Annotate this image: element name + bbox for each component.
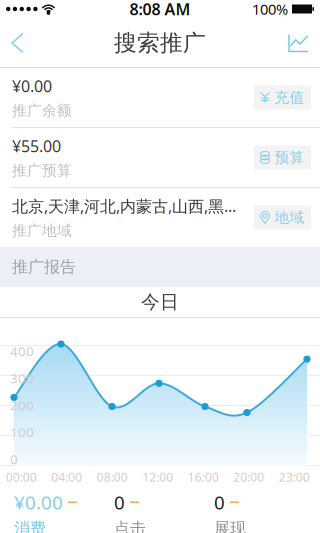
staticText: 23:00 <box>279 469 310 485</box>
staticText: 点击 <box>114 519 146 533</box>
staticText: 400 <box>10 342 34 360</box>
staticText: 100% <box>252 0 288 19</box>
staticText: 预算 <box>274 148 304 166</box>
staticText: 12:00 <box>142 469 173 485</box>
staticText: ¥0.00 <box>12 75 52 97</box>
staticText: 0 <box>214 490 225 515</box>
staticText: 0 <box>10 450 18 468</box>
staticText: 100 <box>10 423 34 441</box>
staticText: 消费 <box>14 519 46 533</box>
button[interactable]: 预算 <box>254 145 311 169</box>
staticText: 0 <box>114 490 125 515</box>
button[interactable]: Back <box>0 19 39 67</box>
staticText: 搜索推广 <box>114 29 206 57</box>
staticText: 08:00 <box>97 469 128 485</box>
staticText: 20:00 <box>233 469 264 485</box>
button[interactable]: 地域 <box>254 205 311 229</box>
staticText: 推广地域 <box>12 222 72 240</box>
staticText: 04:00 <box>51 469 82 485</box>
staticText: 300 <box>10 369 34 387</box>
staticText: 推广预算 <box>12 162 72 180</box>
staticText: 推广报告 <box>12 257 76 277</box>
button[interactable]: Report chart <box>273 19 320 67</box>
staticText: 地域 <box>274 208 304 226</box>
staticText: 8:08 AM <box>129 0 190 20</box>
staticText: 充值 <box>274 88 304 106</box>
staticText: 00:00 <box>6 469 37 485</box>
staticText: 展现 <box>214 519 246 533</box>
button[interactable]: 充值 <box>254 85 311 109</box>
staticText: ¥55.00 <box>12 135 61 157</box>
staticText: 北京,天津,河北,内蒙古,山西,黑龙… <box>12 195 246 217</box>
staticText: 16:00 <box>188 469 219 485</box>
staticText: 推广余额 <box>12 102 72 120</box>
staticText: 今日 <box>141 290 179 313</box>
staticText: ¥0.00 <box>14 490 63 515</box>
staticText: 200 <box>10 396 34 414</box>
